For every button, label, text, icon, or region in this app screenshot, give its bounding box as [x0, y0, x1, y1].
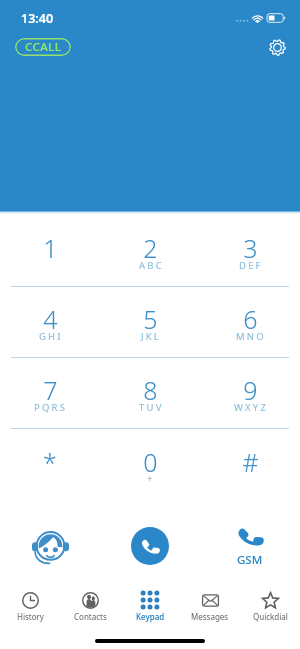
staticText: CCALL — [25, 39, 62, 55]
staticText: ABC — [139, 259, 164, 272]
staticText: Keypad — [136, 611, 165, 622]
button[interactable]: Messages — [180, 579, 240, 623]
staticText: WXYZ — [234, 401, 269, 414]
button[interactable]: 4 — [0, 287, 100, 357]
button[interactable]: 8 — [100, 358, 200, 428]
staticText: 4 — [43, 302, 58, 336]
staticText: JKL — [141, 330, 162, 343]
staticText: 5 — [143, 302, 158, 336]
button[interactable]: Settings — [261, 31, 293, 63]
button[interactable]: 5 — [100, 287, 200, 357]
button[interactable]: 7 — [0, 358, 100, 428]
staticText: + — [147, 472, 155, 485]
button[interactable]: Keypad — [120, 579, 180, 623]
button[interactable]: 3 — [200, 216, 300, 286]
staticText: MNO — [236, 330, 266, 343]
staticText: GSM — [237, 552, 263, 568]
staticText: 1 — [43, 231, 58, 265]
button[interactable]: 9 — [200, 358, 300, 428]
staticText: Contacts — [74, 611, 107, 622]
staticText: TUV — [139, 401, 164, 414]
staticText: Messages — [191, 611, 229, 622]
staticText: 3 — [243, 231, 258, 265]
staticText: 6 — [243, 302, 258, 336]
staticText: PQRS — [34, 401, 68, 414]
button[interactable]: # — [200, 429, 300, 500]
button[interactable]: Contacts — [60, 579, 120, 623]
button[interactable]: History — [0, 579, 60, 623]
button[interactable]: 1 — [0, 216, 100, 286]
button[interactable]: 6 — [200, 287, 300, 357]
staticText: Quickdial — [253, 611, 288, 622]
button[interactable]: CCALL — [15, 38, 71, 56]
staticText: 7 — [43, 373, 58, 407]
button[interactable]: 0 — [100, 429, 200, 500]
staticText: GHI — [39, 330, 63, 343]
button[interactable]: 2 — [100, 216, 200, 286]
staticText: History — [17, 611, 44, 622]
button[interactable]: Support — [26, 522, 74, 570]
button[interactable]: Quickdial — [240, 579, 300, 623]
staticText: DEF — [239, 259, 263, 272]
button[interactable]: GSM — [234, 522, 266, 571]
staticText: # — [242, 445, 259, 479]
staticText: 0 — [143, 445, 158, 479]
button[interactable]: * — [0, 429, 100, 500]
staticText: 9 — [243, 373, 258, 407]
staticText: 13:40 — [21, 10, 54, 27]
button[interactable]: Call — [131, 527, 169, 565]
staticText: * — [43, 445, 57, 479]
staticText: 2 — [143, 231, 158, 265]
staticText: 8 — [143, 373, 158, 407]
